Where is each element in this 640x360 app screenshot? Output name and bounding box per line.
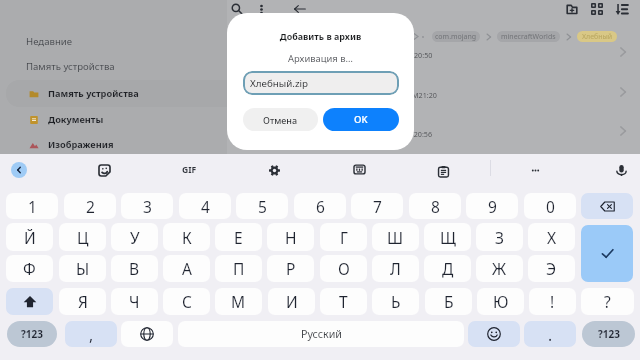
button[interactable]: ?123 (7, 321, 57, 347)
button[interactable]: M21:20 (408, 75, 640, 109)
button[interactable]: Ц (59, 223, 106, 251)
button[interactable]: Э (528, 255, 575, 282)
button[interactable]: ?123 (582, 321, 635, 347)
button[interactable]: Хлебный.zip (243, 71, 399, 95)
button[interactable]: Enter (581, 225, 633, 282)
button[interactable]: О (320, 255, 367, 282)
button[interactable]: Voice input (607, 156, 635, 184)
button[interactable]: 0 (524, 193, 576, 219)
button[interactable]: Щ (424, 223, 471, 251)
button[interactable]: Память устройства (18, 57, 107, 75)
button[interactable]: More options (250, 0, 272, 20)
button[interactable]: ? (581, 288, 634, 315)
button[interactable]: Д (424, 255, 471, 282)
staticText: Н (285, 227, 297, 248)
button[interactable]: , (65, 321, 117, 347)
button[interactable]: Search (226, 0, 248, 20)
button[interactable]: С (163, 288, 210, 315)
button[interactable]: Change language (121, 321, 173, 347)
button[interactable]: OK (323, 108, 399, 131)
button[interactable]: Отмена (243, 108, 318, 131)
button[interactable]: com.mojang (432, 31, 480, 42)
button[interactable]: Русский (178, 321, 464, 347)
button[interactable]: А (163, 255, 210, 282)
button[interactable]: Документы (6, 108, 227, 130)
button[interactable]: Stickers (90, 156, 118, 184)
button[interactable]: . (524, 321, 576, 347)
button[interactable]: Х (528, 223, 575, 251)
button[interactable]: 20:50 (408, 35, 640, 69)
button[interactable]: Е (215, 223, 262, 251)
button[interactable]: GIF (177, 163, 202, 177)
staticText: Архивация в… (227, 52, 414, 65)
button[interactable]: Backspace (581, 193, 633, 219)
button[interactable]: Ч (111, 288, 158, 315)
button[interactable]: Settings (260, 156, 288, 184)
button[interactable]: New folder (561, 0, 583, 20)
staticText: Хлебный (582, 32, 613, 42)
button[interactable]: Translate (345, 155, 373, 183)
button[interactable]: Я (59, 288, 106, 315)
button[interactable]: 6 (294, 193, 346, 219)
staticText: Ы (76, 258, 90, 279)
staticText: Х (547, 227, 557, 248)
button[interactable]: 4 (179, 193, 231, 219)
button[interactable]: Clipboard (429, 157, 457, 185)
button[interactable]: Ш (372, 223, 419, 251)
button[interactable]: Back (5, 156, 33, 184)
staticText: M21:20 (412, 90, 437, 100)
staticText: Ш (387, 227, 404, 248)
button[interactable]: 9 (466, 193, 518, 219)
button[interactable]: Ф (6, 255, 53, 282)
button[interactable]: Ы (59, 255, 106, 282)
button[interactable]: Т (320, 288, 367, 315)
button[interactable]: Sort (611, 0, 633, 20)
button[interactable]: Shift (6, 288, 53, 315)
button[interactable]: Grid view (586, 0, 608, 20)
button[interactable]: Ю (477, 288, 524, 315)
button[interactable]: Р (267, 255, 314, 282)
button[interactable]: Г (320, 223, 367, 251)
button[interactable]: /20:56 (408, 114, 640, 148)
button[interactable]: Недавние (18, 32, 65, 50)
button[interactable]: М (215, 288, 262, 315)
button[interactable]: Н (267, 223, 314, 251)
staticText: 0 (546, 196, 555, 217)
button[interactable]: В (111, 255, 158, 282)
staticText: . (548, 324, 553, 345)
button[interactable]: ! (529, 288, 576, 315)
staticText: Ч (129, 291, 140, 312)
staticText: Документы (48, 113, 104, 126)
button[interactable]: 3 (121, 193, 173, 219)
button[interactable]: Л (372, 255, 419, 282)
button[interactable]: Память устройства (6, 80, 227, 107)
button[interactable]: Back (289, 0, 311, 20)
button[interactable]: Изображения (6, 133, 227, 155)
button[interactable]: И (268, 288, 315, 315)
button[interactable]: Хлебный (577, 31, 617, 42)
staticText: Е (234, 227, 243, 248)
button[interactable]: З (476, 223, 523, 251)
button[interactable]: minecraftWorlds (497, 31, 560, 42)
button[interactable]: Б (425, 288, 472, 315)
staticText: 5 (258, 196, 267, 217)
button[interactable]: К (163, 223, 210, 251)
button[interactable]: 5 (236, 193, 288, 219)
staticText: 3 (143, 196, 152, 217)
button[interactable]: More (521, 156, 549, 184)
button[interactable]: П (215, 255, 262, 282)
staticText: Ь (391, 291, 401, 312)
button[interactable]: Й (6, 223, 53, 251)
staticText: 4 (201, 196, 210, 217)
staticText: Ю (493, 291, 509, 312)
staticText: 9 (488, 196, 497, 217)
button[interactable]: 7 (351, 193, 403, 219)
button[interactable]: У (111, 223, 158, 251)
button[interactable]: Ж (476, 255, 523, 282)
button[interactable]: Emoji (468, 321, 520, 347)
button[interactable]: Ь (372, 288, 419, 315)
button[interactable]: 1 (6, 193, 58, 219)
staticText: 1 (28, 196, 37, 217)
button[interactable]: 2 (64, 193, 116, 219)
button[interactable]: 8 (409, 193, 461, 219)
